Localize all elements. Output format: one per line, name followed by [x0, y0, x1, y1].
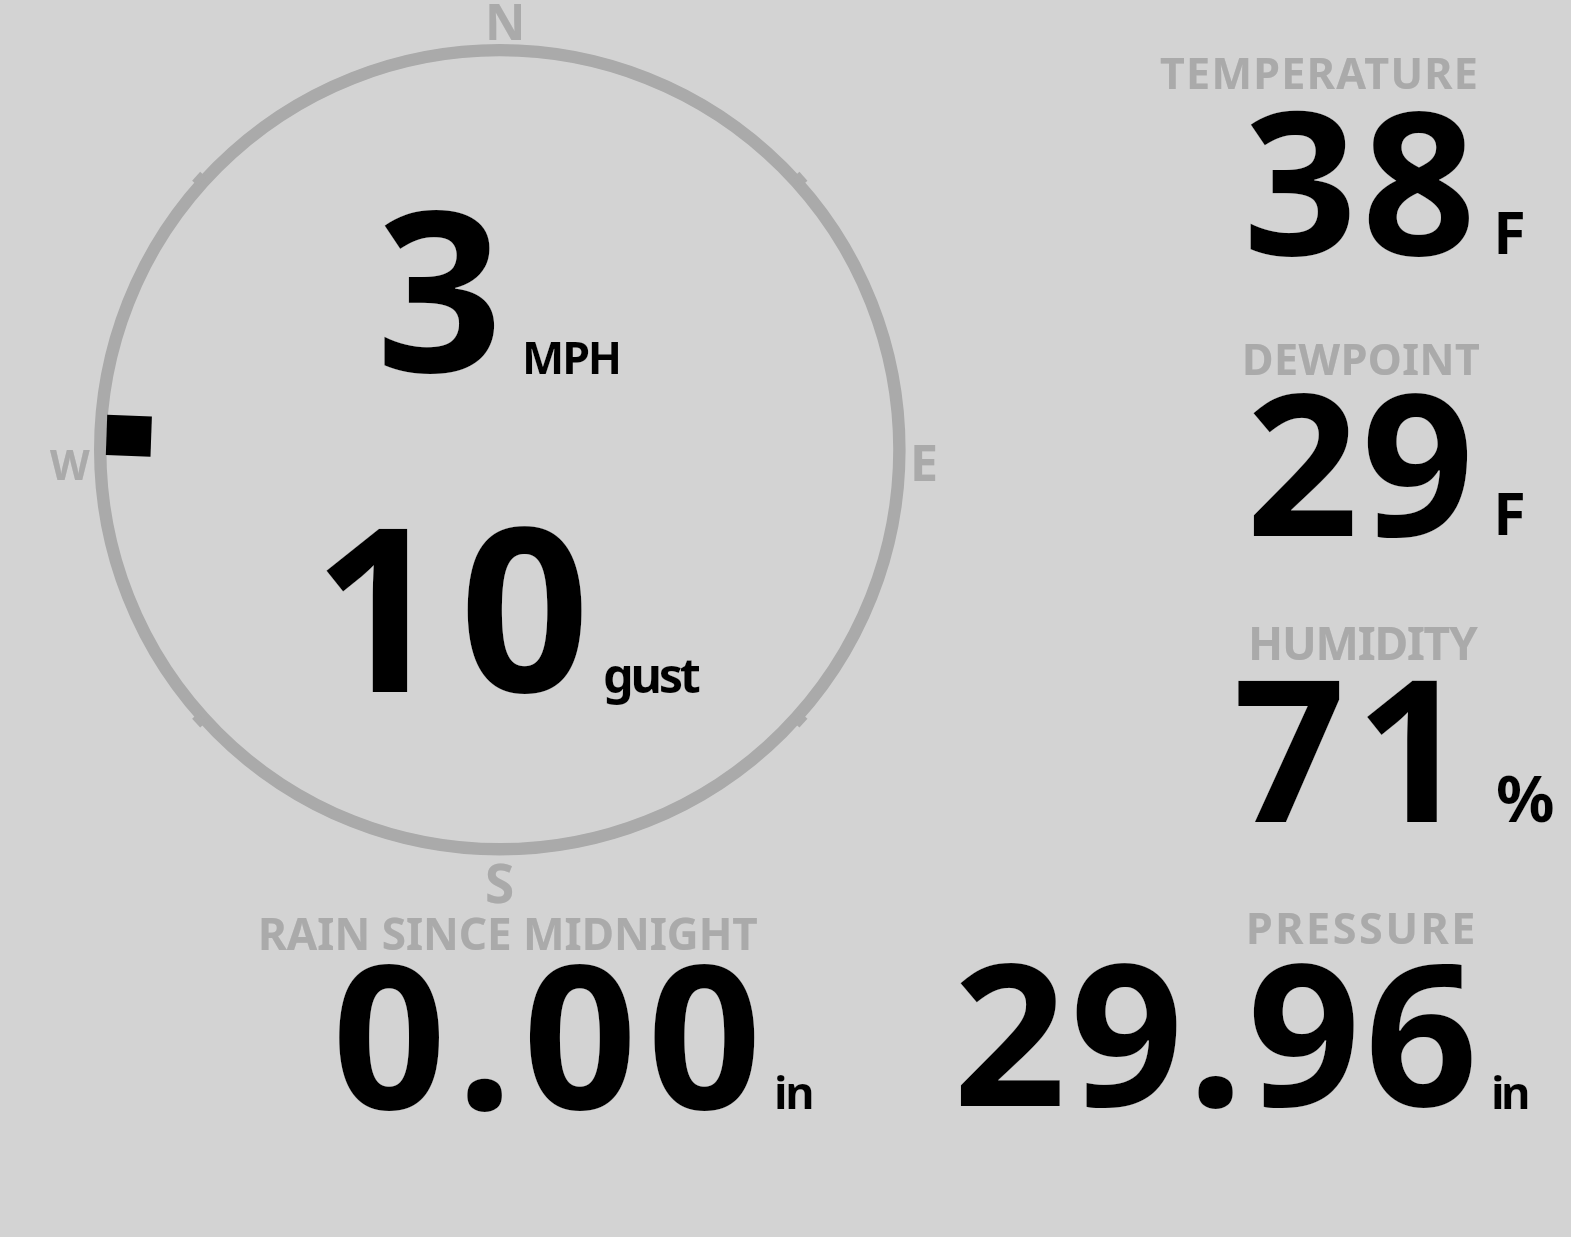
button[interactable]: Dewpoint 29 F — [1150, 325, 1570, 585]
staticText: 3 — [376, 135, 503, 437]
staticText: 71 — [1233, 611, 1478, 879]
button[interactable]: Humidity 71 percent — [1150, 610, 1570, 870]
staticText: E — [910, 427, 939, 495]
staticText: TEMPERATURE — [1160, 43, 1480, 102]
button[interactable]: Temperature 38 F — [1150, 40, 1570, 300]
staticText: DEWPOINT — [1242, 329, 1481, 388]
staticText: S — [485, 846, 515, 918]
staticText: F — [1493, 190, 1526, 272]
staticText: 29.96 — [953, 894, 1483, 1164]
staticText: in — [774, 1061, 813, 1122]
button[interactable]: Rain since midnight 0.00 in — [250, 900, 830, 1130]
staticText: PRESSURE — [1246, 898, 1478, 957]
staticText: gust — [603, 641, 698, 707]
staticText: MPH — [522, 326, 621, 387]
staticText: in — [1491, 1060, 1528, 1122]
button[interactable]: Pressure 29.96 in — [940, 900, 1540, 1130]
staticText: W — [50, 436, 90, 492]
staticText: F — [1493, 471, 1526, 553]
staticText: 0.00 — [332, 895, 772, 1167]
staticText: HUMIDITY — [1248, 611, 1477, 674]
staticText: % — [1496, 753, 1555, 842]
staticText: N — [485, 0, 526, 55]
staticText: 10 — [313, 448, 606, 759]
staticText: 29 — [1246, 325, 1477, 593]
button[interactable]: Wind 3 MPH gusting 10, from the west — [40, 0, 960, 900]
staticText: RAIN SINCE MIDNIGHT — [258, 903, 758, 963]
staticText: 38 — [1243, 41, 1481, 313]
